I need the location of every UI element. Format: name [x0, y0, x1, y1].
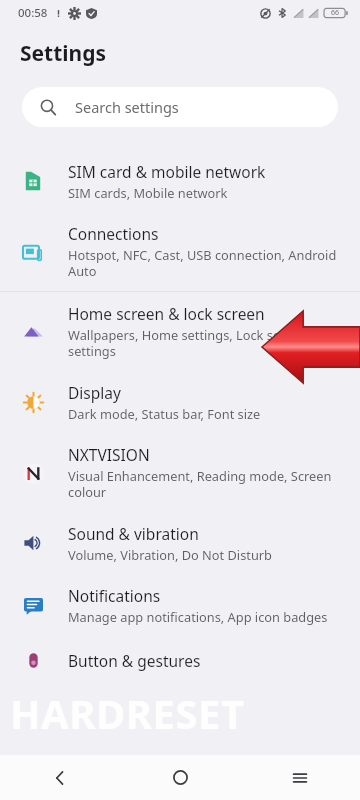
- staticText: 00:58: [18, 5, 48, 21]
- staticText: Settings: [20, 39, 107, 68]
- staticText: Manage app notifications, App icon badge…: [68, 608, 328, 625]
- staticText: Notifications: [68, 585, 161, 606]
- staticText: SIM cards, Mobile network: [68, 184, 228, 201]
- staticText: Wallpapers, Home settings, Lock screen s…: [68, 326, 344, 360]
- staticText: SIM card & mobile network: [68, 161, 266, 182]
- staticText: 66: [331, 8, 340, 18]
- button[interactable]: Search settings: [22, 87, 338, 127]
- staticText: Visual Enhancement, Reading mode, Screen…: [68, 467, 332, 501]
- button[interactable]: Sound & vibration: [0, 512, 360, 574]
- staticText: Display: [68, 382, 121, 403]
- button[interactable]: Button & gestures: [0, 636, 360, 684]
- button[interactable]: SIM card & mobile network: [0, 150, 360, 212]
- staticText: HARDRESET: [10, 686, 245, 740]
- staticText: Button & gestures: [68, 650, 201, 671]
- staticText: Sound & vibration: [68, 523, 199, 544]
- button[interactable]: Home: [120, 755, 240, 800]
- button[interactable]: Display: [0, 371, 360, 433]
- staticText: Search settings: [75, 97, 179, 117]
- button[interactable]: Recent apps: [240, 755, 360, 800]
- staticText: Connections: [68, 223, 159, 244]
- staticText: Home screen & lock screen: [68, 303, 265, 324]
- staticText: NXTVISION: [68, 444, 150, 465]
- button[interactable]: Notifications: [0, 574, 360, 636]
- staticText: Hotspot, NFC, Cast, USB connection, Andr…: [68, 246, 337, 280]
- button[interactable]: Home screen & lock screen: [0, 292, 360, 371]
- button[interactable]: Back: [0, 755, 120, 800]
- button[interactable]: NXTVISION: [0, 433, 360, 512]
- staticText: Dark mode, Status bar, Font size: [68, 405, 261, 422]
- staticText: Volume, Vibration, Do Not Disturb: [68, 546, 272, 563]
- button[interactable]: Connections: [0, 212, 360, 291]
